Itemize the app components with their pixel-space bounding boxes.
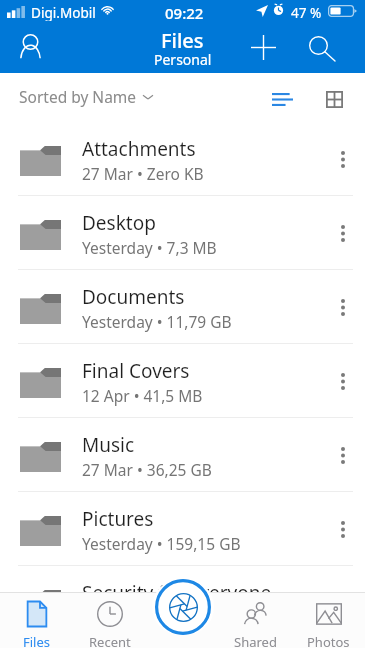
button[interactable]: Account — [8, 25, 52, 69]
staticText: Yesterday • 11,79 GB — [82, 311, 232, 332]
button[interactable]: Recent — [73, 592, 146, 648]
button[interactable]: More options — [321, 285, 365, 329]
staticText: Desktop — [82, 210, 156, 236]
staticText: Recent — [89, 633, 131, 648]
staticText: Pictures — [82, 506, 154, 532]
button[interactable]: Grid view — [312, 81, 357, 117]
button[interactable]: More options — [321, 433, 365, 477]
button[interactable]: Search — [297, 24, 347, 74]
staticText: Shared — [234, 633, 277, 648]
staticText: 12 Apr • 41,5 MB — [82, 385, 203, 406]
staticText: Documents — [82, 284, 185, 310]
staticText: Yesterday • 7,3 MB — [82, 237, 217, 258]
staticText: Yesterday • 1,2 GB — [82, 607, 214, 628]
button[interactable]: Sort order — [260, 81, 304, 117]
button[interactable]: More options — [321, 581, 365, 625]
staticText: Attachments — [82, 136, 196, 162]
staticText: Music — [82, 432, 135, 458]
staticText: 27 Mar • 36,25 GB — [82, 459, 212, 480]
button[interactable]: Documents — [0, 270, 365, 343]
staticText: Final Covers — [82, 358, 190, 384]
button[interactable]: More options — [321, 137, 365, 181]
staticText: Security for everyone — [82, 580, 272, 606]
button[interactable]: Shared — [219, 592, 292, 648]
staticText: Personal — [154, 50, 212, 69]
button[interactable]: Security for everyone — [0, 566, 365, 639]
button[interactable]: Scan document — [152, 579, 214, 635]
staticText: Digi.Mobil — [31, 3, 96, 22]
button[interactable]: More options — [321, 359, 365, 403]
button[interactable]: Attachments — [0, 122, 365, 195]
button[interactable]: Desktop — [0, 196, 365, 269]
staticText: Sorted by Name — [19, 86, 137, 107]
staticText: Photos — [307, 633, 350, 648]
staticText: 47 % — [291, 3, 322, 22]
button[interactable]: Final Covers — [0, 344, 365, 417]
button[interactable]: Sorted by Name — [19, 86, 153, 107]
button[interactable]: Music — [0, 418, 365, 491]
button[interactable]: Add — [241, 25, 286, 70]
button[interactable]: Files — [0, 592, 73, 648]
staticText: Yesterday • 159,15 GB — [82, 533, 241, 554]
staticText: 09:22 — [165, 3, 204, 23]
button[interactable]: Pictures — [0, 492, 365, 565]
button[interactable]: Photos — [292, 592, 365, 648]
button[interactable]: More options — [321, 211, 365, 255]
staticText: Files — [161, 27, 204, 54]
staticText: 27 Mar • Zero KB — [82, 163, 204, 184]
staticText: Files — [23, 633, 51, 648]
button[interactable]: More options — [321, 507, 365, 551]
